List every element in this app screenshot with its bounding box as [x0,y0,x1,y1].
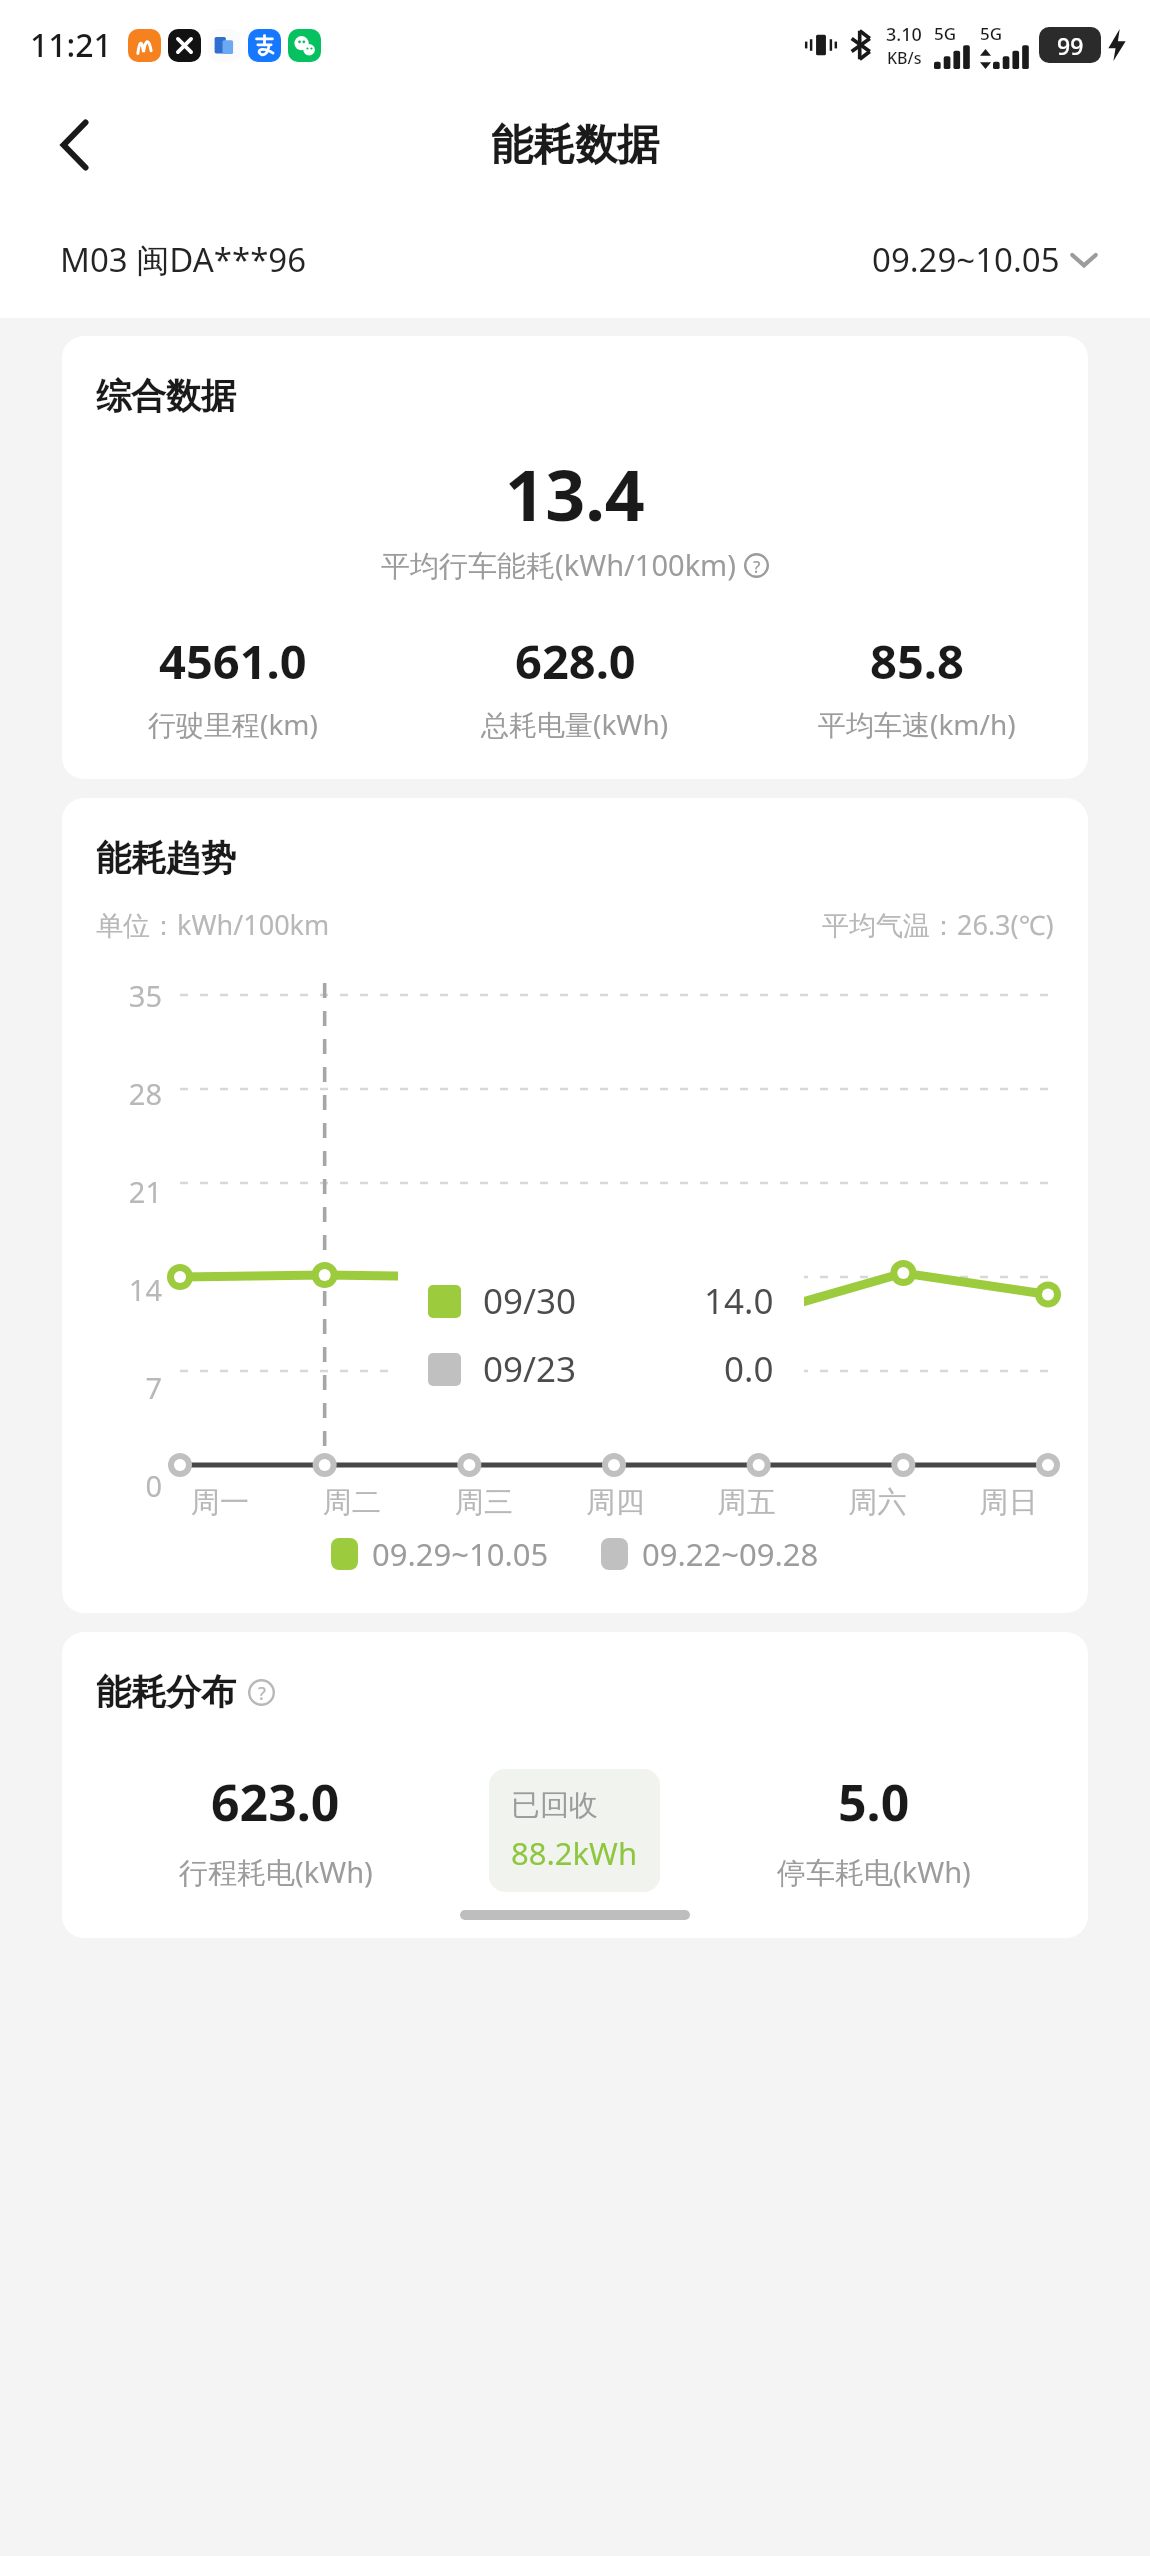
staticText: 99 [1057,30,1084,61]
staticText: 周六 [812,1484,943,1521]
staticText: ? [753,555,761,577]
staticText: 周五 [681,1484,812,1521]
staticText: 停车耗电(kWh) [777,1852,971,1892]
staticText: 11:21 [30,23,112,67]
staticText: 行程耗电(kWh) [179,1852,373,1892]
staticText: 5G [980,22,1003,45]
staticText: 14 [62,1270,162,1309]
staticText: 09.29~10.05 [372,1533,549,1575]
staticText: 平均气温：26.3(℃) [822,906,1054,943]
staticText: 周三 [418,1484,550,1521]
staticText: 能耗分布 [96,1670,236,1714]
staticText: 88.2kWh [511,1832,638,1874]
button[interactable]: 09.29~10.05 [866,231,1104,288]
button[interactable]: Back [40,110,110,180]
staticText: M03 闽DA***96 [60,237,307,282]
staticText: 85.8 [870,629,964,693]
staticText: 14.0 [704,1277,774,1325]
staticText: 7 [62,1368,162,1407]
staticText: 09.22~09.28 [642,1533,819,1575]
staticText: ? [258,1681,266,1705]
staticText: 周一 [154,1484,286,1521]
staticText: 628.0 [515,629,636,693]
staticText: 能耗数据 [491,119,659,172]
staticText: 周四 [550,1484,681,1521]
staticText: 总耗电量(kWh) [481,705,669,743]
staticText: 0.0 [724,1345,774,1393]
staticText: 3.10 [886,22,922,47]
staticText: 单位：kWh/100km [96,906,330,943]
staticText: KB/s [887,47,922,69]
button[interactable]: 09.29~10.05 [327,1529,553,1579]
staticText: 周日 [943,1484,1074,1521]
button[interactable]: 综合数据 [62,336,1088,779]
staticText: 已回收 [511,1787,598,1824]
staticText: 09.29~10.05 [872,237,1060,282]
staticText: 35 [62,976,162,1015]
button[interactable]: 能耗分布 [62,1632,1088,1938]
staticText: 09/30 [483,1277,577,1325]
staticText: 综合数据 [96,374,236,418]
staticText: 平均行车能耗(kWh/100km) [381,545,736,585]
staticText: 4561.0 [159,629,307,693]
staticText: 5.0 [838,1768,910,1836]
staticText: 13.4 [62,446,1088,541]
staticText: 0 [62,1466,162,1505]
staticText: 5G [934,22,957,45]
staticText: 09/23 [483,1345,577,1393]
staticText: 28 [62,1074,162,1113]
staticText: 21 [62,1172,162,1211]
button[interactable]: 能耗趋势 [62,798,1088,1613]
staticText: 623.0 [211,1768,340,1836]
staticText: 周二 [286,1484,418,1521]
staticText: 平均车速(km/h) [818,705,1016,743]
staticText: 能耗趋势 [96,836,236,880]
staticText: 行驶里程(km) [148,705,318,743]
button[interactable]: 09.22~09.28 [597,1529,823,1579]
